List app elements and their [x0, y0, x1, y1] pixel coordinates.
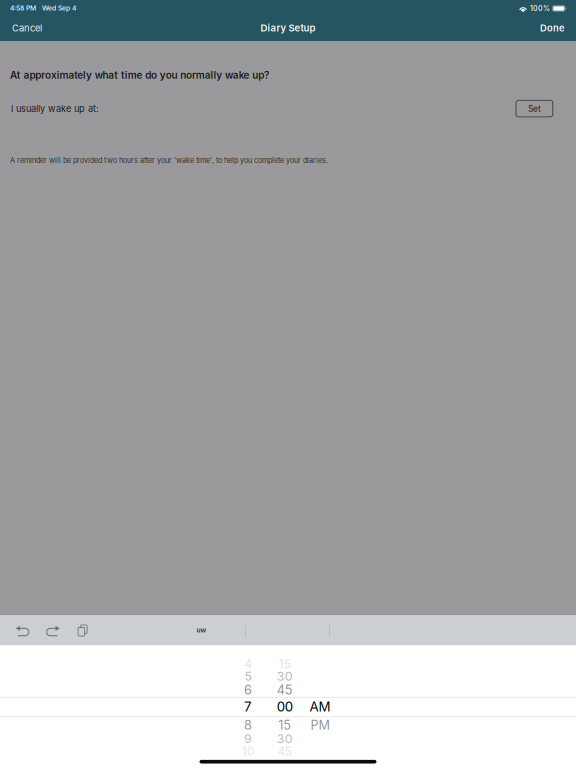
- staticText: 8: [244, 717, 252, 733]
- staticText: Set: [528, 103, 541, 114]
- button[interactable]: Set: [516, 100, 553, 117]
- staticText: At approximately what time do you normal…: [10, 69, 269, 81]
- staticText: 7: [244, 699, 252, 715]
- staticText: 9: [244, 731, 252, 746]
- staticText: 00: [277, 699, 293, 715]
- staticText: Diary Setup: [260, 22, 315, 34]
- button[interactable]: Redo: [40, 615, 66, 645]
- staticText: Cancel: [12, 22, 42, 34]
- staticText: 6: [244, 682, 252, 697]
- staticText: A reminder will be provided two hours af…: [10, 156, 328, 165]
- staticText: 15: [279, 657, 291, 671]
- staticText: 4:58 PM Wed Sep 4: [10, 4, 76, 12]
- button[interactable]: Done: [530, 15, 576, 41]
- staticText: 30: [277, 731, 293, 746]
- staticText: AM: [309, 699, 330, 715]
- staticText: 4: [244, 657, 251, 671]
- button[interactable]: uw: [171, 620, 231, 640]
- staticText: 45: [278, 744, 292, 758]
- button[interactable]: Undo: [9, 615, 35, 645]
- staticText: 15: [278, 717, 291, 733]
- staticText: uw: [196, 626, 206, 634]
- button[interactable]: Paste: [70, 615, 96, 645]
- staticText: 5: [244, 669, 251, 684]
- staticText: 30: [277, 669, 293, 684]
- staticText: Done: [540, 22, 565, 34]
- staticText: 45: [277, 682, 293, 697]
- staticText: 100%: [530, 4, 550, 13]
- staticText: PM: [310, 717, 329, 733]
- staticText: I usually wake up at:: [11, 103, 99, 114]
- staticText: 10: [242, 744, 254, 758]
- button[interactable]: Cancel: [0, 15, 52, 41]
